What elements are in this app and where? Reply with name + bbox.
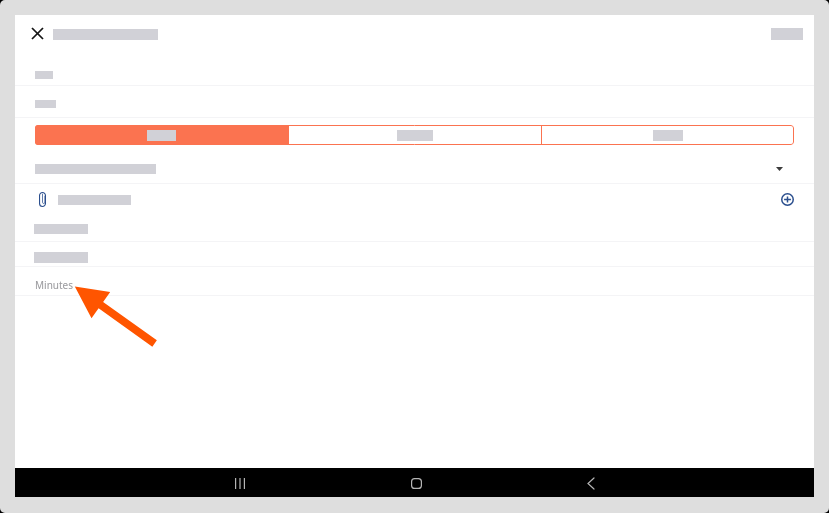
button[interactable]: Home	[398, 468, 434, 497]
button[interactable]	[15, 184, 814, 242]
button[interactable]: Expand	[761, 151, 797, 181]
button[interactable]	[542, 125, 794, 145]
button[interactable]	[15, 118, 814, 184]
button[interactable]	[15, 85, 814, 118]
button[interactable]	[15, 295, 814, 323]
button[interactable]	[289, 125, 541, 145]
button[interactable]: Back	[573, 468, 609, 497]
button[interactable]	[15, 242, 814, 267]
button[interactable]: Recents	[222, 468, 258, 497]
button[interactable]	[15, 15, 814, 85]
button[interactable]: Close	[19, 15, 55, 55]
button[interactable]: Add	[769, 183, 805, 215]
button[interactable]	[35, 125, 288, 145]
staticText: Minutes	[35, 278, 74, 292]
button[interactable]	[15, 267, 814, 295]
